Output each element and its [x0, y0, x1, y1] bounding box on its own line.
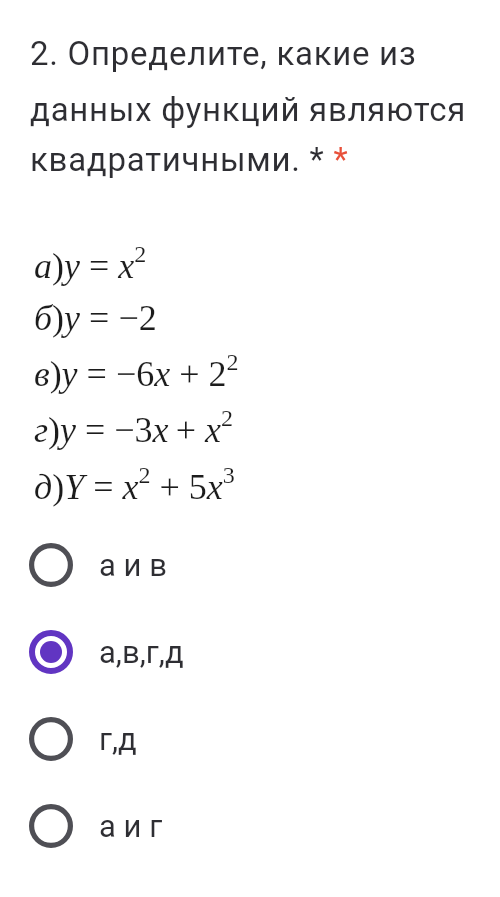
staticText: квадратичными. * *: [30, 140, 349, 179]
button[interactable]: а и в: [0, 525, 500, 605]
staticText: данных функций являются: [30, 90, 466, 129]
button[interactable]: г,д: [0, 699, 500, 779]
staticText: а,в,г,д: [99, 634, 184, 670]
staticText: г,д: [99, 721, 137, 757]
staticText: а и в: [99, 547, 167, 583]
button[interactable]: а,в,г,д: [0, 612, 500, 692]
staticText: б)y = −2: [34, 298, 157, 338]
staticText: в)y = −6x + 22: [34, 349, 239, 394]
staticText: 2. Определите, какие из: [30, 34, 417, 73]
button[interactable]: а и г: [0, 786, 500, 866]
staticText: a)y = x2: [34, 241, 147, 286]
staticText: д)Y = x2 + 5x3: [34, 462, 235, 507]
staticText: г)y = −3x + x2: [34, 405, 234, 450]
staticText: а и г: [99, 808, 163, 844]
